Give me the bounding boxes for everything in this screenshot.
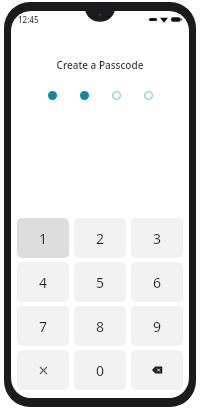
button[interactable]: Backspace — [131, 350, 183, 390]
staticText: 6 — [153, 273, 162, 292]
staticText: 9 — [153, 317, 162, 336]
button[interactable]: 0 — [74, 350, 126, 390]
staticText: 8 — [96, 317, 105, 336]
staticText: 0 — [96, 361, 105, 380]
staticText: 1 — [39, 229, 48, 248]
staticText: 4 — [39, 273, 48, 292]
button[interactable]: 1 — [17, 218, 69, 258]
button[interactable]: 2 — [74, 218, 126, 258]
button[interactable]: 7 — [17, 306, 69, 346]
button[interactable]: 9 — [131, 306, 183, 346]
staticText: 3 — [153, 229, 162, 248]
button[interactable]: 4 — [17, 262, 69, 302]
staticText: 7 — [39, 317, 48, 336]
staticText: 2 — [96, 229, 105, 248]
button[interactable]: 5 — [74, 262, 126, 302]
staticText: 5 — [96, 273, 105, 292]
button[interactable]: 6 — [131, 262, 183, 302]
button[interactable]: 8 — [74, 306, 126, 346]
staticText: 12:45 — [18, 14, 39, 25]
staticText: Create a Passcode — [11, 58, 189, 72]
button[interactable]: Cancel — [17, 350, 69, 390]
button[interactable]: 3 — [131, 218, 183, 258]
